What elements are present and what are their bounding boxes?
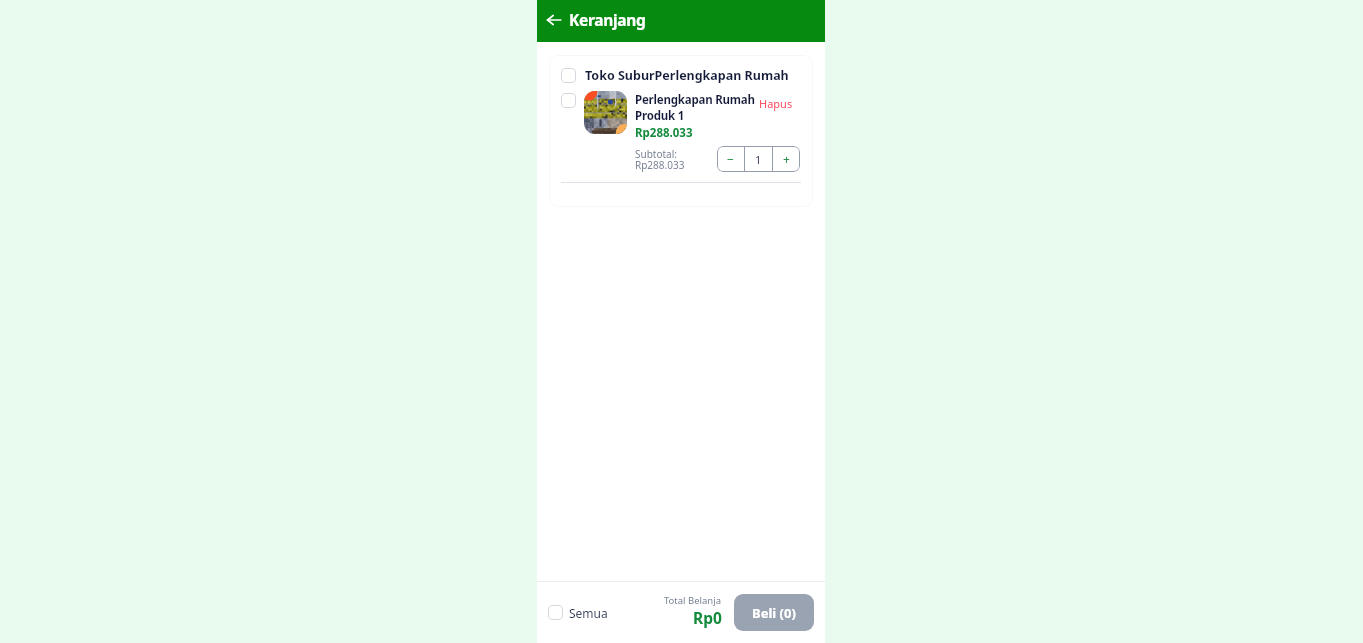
staticText: Subtotal: Rp288.033: [635, 147, 685, 172]
staticText: Perlengkapan Rumah Produk 1: [635, 92, 757, 123]
staticText: Beli (0): [752, 604, 796, 622]
button[interactable]: Increase: [773, 146, 800, 172]
staticText: −: [727, 151, 734, 167]
button[interactable]: Hapus: [759, 96, 793, 111]
staticText: Semua: [569, 605, 608, 621]
staticText: Hapus: [759, 96, 793, 111]
staticText: 1: [755, 152, 762, 167]
staticText: Toko SuburPerlengkapan Rumah: [585, 67, 789, 84]
staticText: Total Belanja: [664, 594, 722, 607]
button[interactable]: Select: [548, 605, 563, 620]
button[interactable]: Decrease: [717, 146, 744, 172]
button[interactable]: Select: [561, 68, 576, 83]
button[interactable]: Select: [548, 582, 614, 643]
staticText: Rp0: [693, 607, 722, 628]
button[interactable]: Back: [544, 10, 564, 30]
button[interactable]: Beli (0): [734, 594, 814, 631]
staticText: Keranjang: [569, 9, 646, 30]
staticText: Rp288.033: [635, 125, 693, 141]
staticText: +: [783, 151, 790, 167]
button[interactable]: Select: [561, 93, 576, 108]
